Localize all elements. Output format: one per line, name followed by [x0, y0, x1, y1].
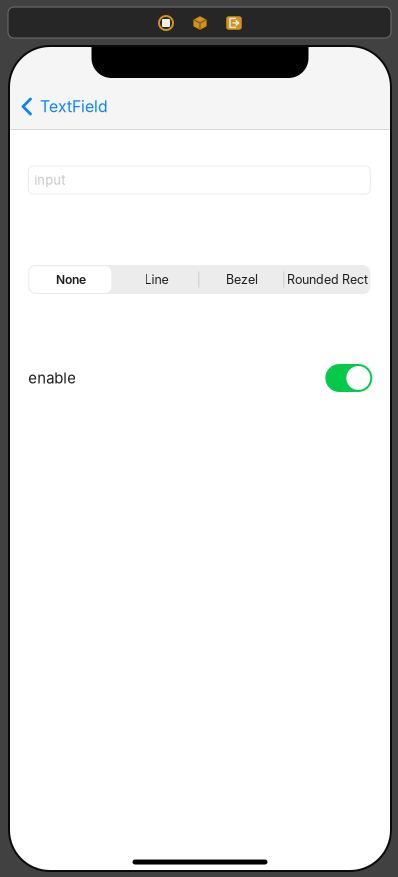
staticText: Bezel	[226, 272, 258, 287]
button[interactable]: input	[28, 166, 370, 194]
button[interactable]: None	[28, 265, 114, 294]
staticText: None	[56, 272, 86, 287]
button[interactable]: Live Preview	[155, 12, 177, 34]
staticText: TextField	[40, 97, 108, 116]
staticText: Line	[145, 272, 169, 287]
button[interactable]: Rounded Rect	[285, 265, 370, 294]
button[interactable]: Line	[114, 265, 199, 294]
button[interactable]: TextField	[12, 90, 117, 123]
button[interactable]: enable	[325, 364, 372, 392]
button[interactable]: Bezel	[199, 265, 285, 294]
staticText: input	[34, 172, 65, 188]
button[interactable]: Preview on Device	[223, 12, 245, 34]
staticText: enable	[28, 369, 76, 387]
button[interactable]: 3D Preview	[189, 12, 211, 34]
staticText: Rounded Rect	[287, 272, 368, 287]
